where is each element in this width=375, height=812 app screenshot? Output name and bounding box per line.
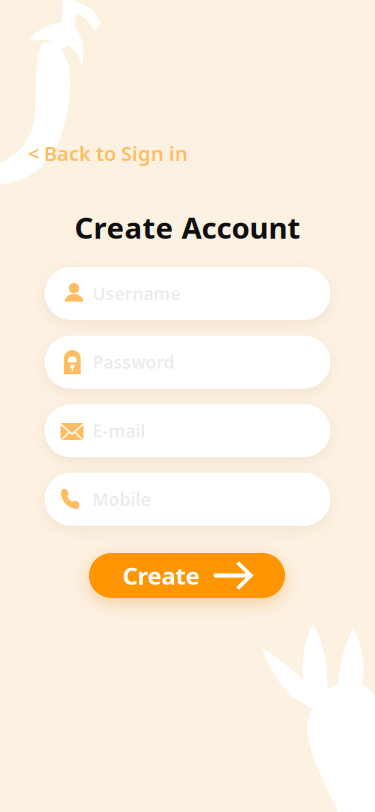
staticText: Mobile: [92, 488, 150, 511]
staticText: <: [28, 140, 39, 167]
staticText: E-mail: [92, 419, 145, 442]
staticText: Username: [92, 282, 180, 305]
button[interactable]: Create: [89, 553, 285, 598]
staticText: Password: [92, 351, 174, 374]
button[interactable]: <: [16, 134, 200, 173]
staticText: Back to Sign in: [44, 140, 188, 167]
staticText: Create Account: [74, 208, 300, 247]
staticText: Create: [122, 560, 199, 591]
